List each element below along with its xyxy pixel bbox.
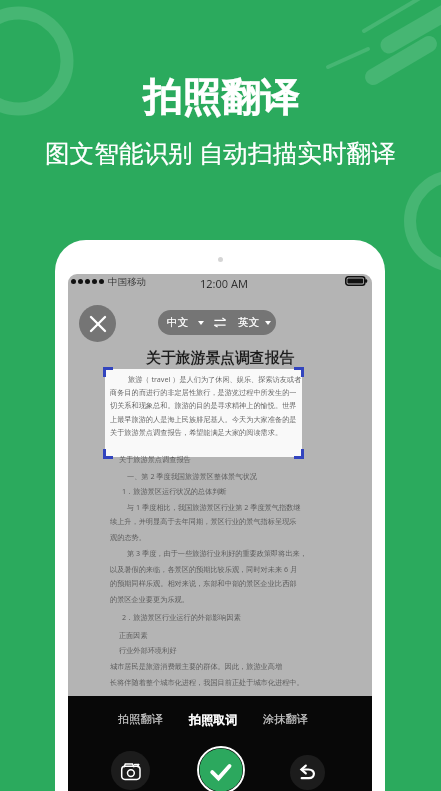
staticText: 上最早旅游的人是海上民族腓尼基人。今天为大家准备的是 xyxy=(110,415,297,424)
button[interactable]: Undo xyxy=(290,755,325,790)
staticText: 中国移动 xyxy=(108,276,146,288)
staticText: 以及暑假的来临，各景区的预期比较乐观，同时对未来 6 月 xyxy=(110,564,298,574)
staticText: 1．旅游景区运行状况的总体判断 xyxy=(122,486,227,496)
staticText: 拍照取词 xyxy=(189,712,237,727)
staticText: 中文 xyxy=(167,316,189,329)
staticText: 涂抹翻译 xyxy=(263,712,308,726)
button[interactable]: Confirm xyxy=(197,746,245,791)
staticText: 的预期同样乐观。相对来说，东部和中部的景区企业比西部 xyxy=(110,579,297,588)
staticText: 旅游（ travel ）是人们为了休闲、娱乐、探索访友或者 xyxy=(128,374,302,384)
staticText: 城市居民是旅游消费最主要的群体。因此，旅游业高增 xyxy=(110,662,283,671)
staticText: 第 3 季度，由于一些旅游行业利好的重要政策即将出来， xyxy=(127,548,307,558)
staticText: 关于旅游景点调查报告，希望能满足大家的阅读需求。 xyxy=(110,428,283,437)
button[interactable]: 涂抹翻译 xyxy=(257,708,313,730)
staticText: 正面因素 xyxy=(119,631,148,640)
staticText: 商务目的而进行的非定居性旅行，是游览过程中所发生的一 xyxy=(110,388,297,397)
staticText: 一、第 2 季度我国旅游景区整体景气状况 xyxy=(127,471,257,481)
staticText: 的景区企业要更为乐观。 xyxy=(110,595,189,604)
staticText: 与 1 季度相比，我国旅游景区行业第 2 季度景气指数继 xyxy=(127,502,301,512)
staticText: 2．旅游景区行业运行的外部影响因素 xyxy=(122,612,241,622)
staticText: 拍照翻译 xyxy=(118,712,163,726)
staticText: 长将伴随着整个城市化进程，我国目前正处于城市化进程中。 xyxy=(110,678,304,687)
button[interactable]: Close xyxy=(79,305,116,342)
staticText: 关于旅游景点调查报告 xyxy=(146,349,294,368)
button[interactable]: 拍照翻译 xyxy=(112,708,168,730)
staticText: 图文智能识别 自动扫描实时翻译 xyxy=(45,136,396,170)
staticText: 切关系和现象总和。旅游的目的是寻求精神上的愉悦。世界 xyxy=(110,401,297,410)
staticText: 英文 xyxy=(238,316,260,329)
button[interactable]: 拍照取词 xyxy=(185,708,241,730)
staticText: 观的态势。 xyxy=(110,533,146,542)
staticText: 拍照翻译 xyxy=(143,73,299,122)
button[interactable]: 中文 xyxy=(158,310,276,335)
staticText: 关于旅游景点调查报告 xyxy=(119,455,191,464)
staticText: 续上升，并明显高于去年同期，景区行业的景气指标呈现乐 xyxy=(110,517,297,526)
staticText: 12:00 AM xyxy=(200,276,248,291)
button[interactable]: Camera xyxy=(111,751,150,790)
staticText: 行业外部环境利好 xyxy=(119,646,177,655)
